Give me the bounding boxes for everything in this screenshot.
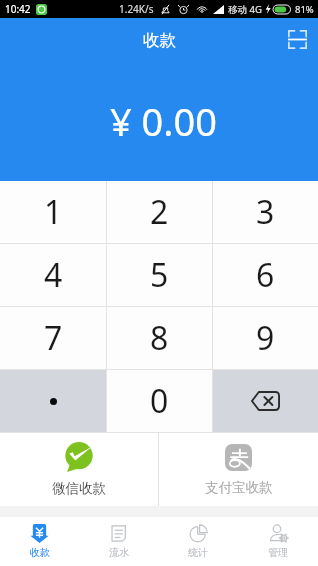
staticText: 5 bbox=[150, 253, 169, 297]
staticText: ¥ 0.00 bbox=[110, 95, 218, 147]
button[interactable]: 6 bbox=[213, 244, 318, 306]
staticText: 流水 bbox=[109, 546, 129, 559]
staticText: 管理 bbox=[268, 546, 288, 559]
staticText: 收款 bbox=[143, 30, 176, 51]
button[interactable]: 管理 bbox=[238, 517, 318, 565]
button[interactable]: Decimal point bbox=[0, 370, 106, 432]
staticText: 10:42 bbox=[5, 2, 31, 16]
button[interactable]: 3 bbox=[213, 181, 318, 243]
staticText: 6 bbox=[256, 253, 275, 297]
button[interactable]: 微信收款 bbox=[0, 433, 158, 506]
staticText: 收款 bbox=[30, 546, 50, 559]
button[interactable]: 收款 bbox=[0, 517, 79, 565]
staticText: 9 bbox=[256, 316, 275, 360]
button[interactable]: 9 bbox=[213, 307, 318, 369]
staticText: 移动 4G bbox=[228, 3, 262, 16]
button[interactable]: 1 bbox=[0, 181, 106, 243]
staticText: 2 bbox=[150, 190, 169, 234]
staticText: 1 bbox=[44, 190, 63, 234]
staticText: 支付宝收款 bbox=[205, 479, 273, 496]
staticText: 7 bbox=[44, 316, 63, 360]
button[interactable]: 统计 bbox=[158, 517, 238, 565]
staticText: 8 bbox=[150, 316, 169, 360]
button[interactable]: 5 bbox=[107, 244, 212, 306]
button[interactable]: Scan QR code bbox=[286, 28, 308, 50]
button[interactable]: 4 bbox=[0, 244, 106, 306]
button[interactable]: 8 bbox=[107, 307, 212, 369]
button[interactable]: 流水 bbox=[79, 517, 158, 565]
button[interactable]: 7 bbox=[0, 307, 106, 369]
staticText: 81% bbox=[295, 3, 314, 16]
button[interactable]: 0 bbox=[107, 370, 212, 432]
button[interactable]: Backspace bbox=[213, 370, 318, 432]
staticText: 3 bbox=[256, 190, 275, 234]
staticText: 统计 bbox=[188, 546, 208, 559]
staticText: 4 bbox=[44, 253, 63, 297]
button[interactable]: 2 bbox=[107, 181, 212, 243]
staticText: 1.24K/s bbox=[119, 2, 154, 16]
button[interactable]: 支付宝收款 bbox=[159, 433, 318, 506]
staticText: 微信收款 bbox=[52, 480, 106, 497]
staticText: 0 bbox=[150, 379, 169, 423]
